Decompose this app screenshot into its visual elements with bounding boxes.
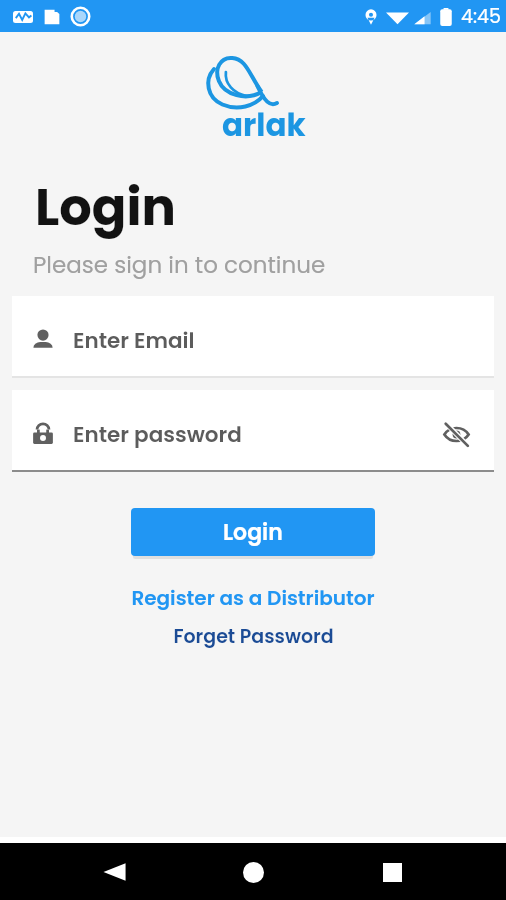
button[interactable]: Enter Email bbox=[12, 296, 494, 378]
staticText: Enter password bbox=[73, 419, 242, 449]
staticText: Login bbox=[35, 171, 176, 242]
staticText: Register as a Distributor bbox=[131, 584, 375, 612]
staticText: 4:45 bbox=[461, 3, 501, 30]
button[interactable]: Home bbox=[229, 848, 277, 896]
staticText: Please sign in to continue bbox=[33, 249, 326, 281]
staticText: Enter Email bbox=[73, 325, 195, 355]
button[interactable]: Enter password bbox=[12, 390, 494, 472]
button[interactable]: Back bbox=[91, 848, 139, 896]
button[interactable]: Forget Password bbox=[0, 621, 506, 651]
staticText: Forget Password bbox=[173, 623, 334, 650]
staticText: arlak bbox=[222, 103, 306, 146]
button[interactable]: Login bbox=[131, 508, 375, 556]
button[interactable]: Toggle password visibility bbox=[434, 412, 478, 456]
button[interactable]: Recent apps bbox=[368, 848, 416, 896]
staticText: Login bbox=[223, 517, 283, 548]
button[interactable]: Register as a Distributor bbox=[0, 583, 506, 613]
